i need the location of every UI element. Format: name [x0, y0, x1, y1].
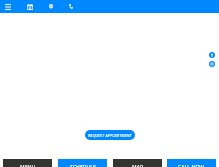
- button[interactable]: Menu: [0, 0, 15, 13]
- staticText: MAP: [132, 164, 144, 167]
- staticText: REQUEST APPOINTMENT: [88, 133, 132, 138]
- staticText: CALL NOW: [178, 164, 205, 167]
- button[interactable]: Instagram: [209, 61, 215, 67]
- button[interactable]: REQUEST APPOINTMENT: [85, 130, 135, 140]
- button[interactable]: Services: [22, 0, 37, 13]
- staticText: MENU: [20, 164, 36, 167]
- button[interactable]: CALL NOW: [167, 159, 216, 167]
- button[interactable]: MENU: [3, 159, 52, 167]
- staticText: SCHEDULE: [70, 164, 96, 167]
- button[interactable]: Location: [43, 0, 58, 13]
- button[interactable]: SCHEDULE: [58, 159, 107, 167]
- button[interactable]: MAP: [113, 159, 162, 167]
- button[interactable]: Facebook: [209, 52, 215, 58]
- button[interactable]: Call: [63, 0, 78, 13]
